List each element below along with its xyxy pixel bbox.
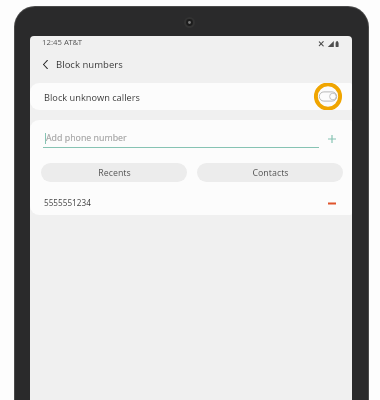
button[interactable]: Contacts <box>197 163 343 182</box>
staticText: Block unknown callers <box>44 91 140 104</box>
button[interactable]: Add number <box>322 129 342 149</box>
button[interactable]: Remove number <box>322 193 342 213</box>
staticText: 12:45 AT&T <box>42 37 83 48</box>
button[interactable]: Block unknown callers <box>30 83 352 110</box>
button[interactable]: Recents <box>41 163 187 182</box>
other: Back <box>38 58 51 71</box>
staticText: Block numbers <box>56 58 123 71</box>
button[interactable]: Back <box>30 51 352 78</box>
button[interactable]: 5555551234 <box>30 191 352 215</box>
staticText: Recents <box>98 167 131 179</box>
staticText: Add phone number <box>46 132 127 144</box>
staticText: 5555551234 <box>44 197 91 208</box>
button[interactable]: Block unknown callers switch <box>313 83 343 110</box>
staticText: Contacts <box>252 167 289 179</box>
